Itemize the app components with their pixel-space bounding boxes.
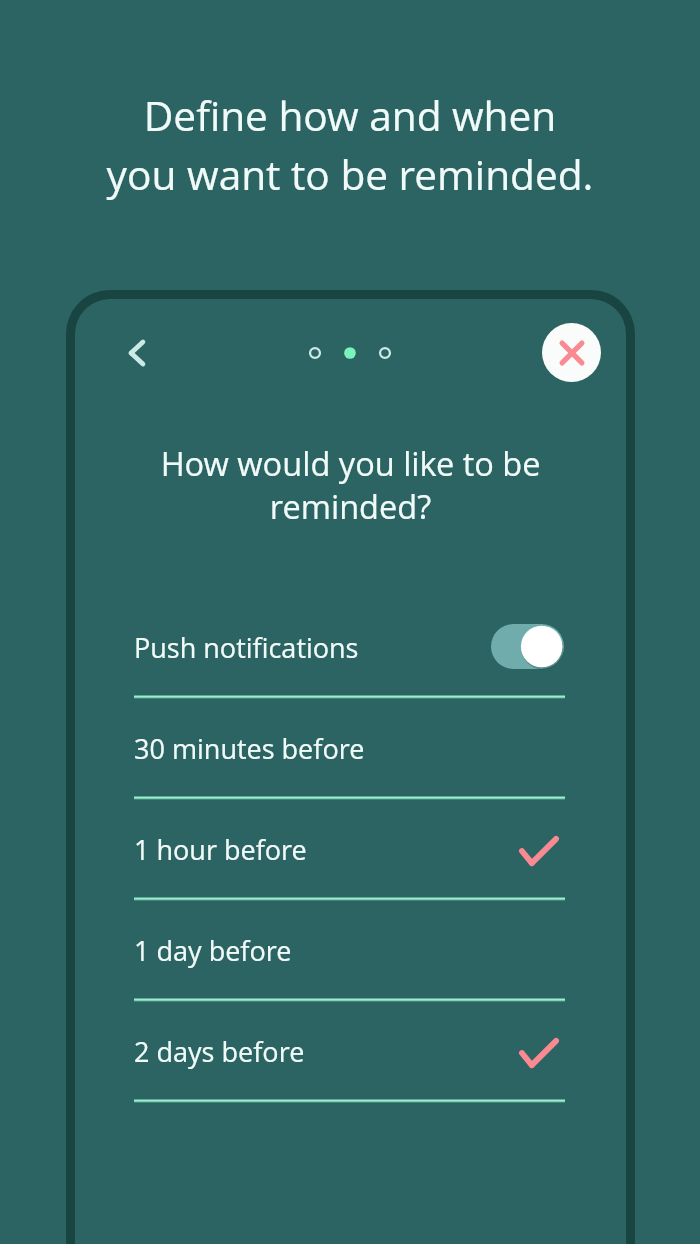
staticText: 2 days before [134,1033,305,1070]
button[interactable]: Step 2 of 3, current [341,344,359,362]
button[interactable]: Toggle push notifications [491,624,564,669]
button[interactable]: Close [542,323,601,382]
staticText: 1 day before [134,932,292,969]
staticText: Define how and when you want to be remin… [0,88,700,202]
button[interactable]: 1 hour before [134,801,565,902]
staticText: 30 minutes before [134,730,365,767]
button[interactable]: Go to step 3 [376,344,394,362]
button[interactable]: Back [113,329,160,376]
button[interactable]: Go to step 1 [306,344,324,362]
staticText: How would you like to be reminded? [66,441,635,529]
button[interactable]: 2 days before [134,1003,565,1104]
button[interactable]: Push notifications [134,599,565,700]
button[interactable]: 1 day before [134,902,565,1003]
staticText: 1 hour before [134,831,307,868]
staticText: Push notifications [134,629,359,666]
button[interactable]: 30 minutes before [134,700,565,801]
